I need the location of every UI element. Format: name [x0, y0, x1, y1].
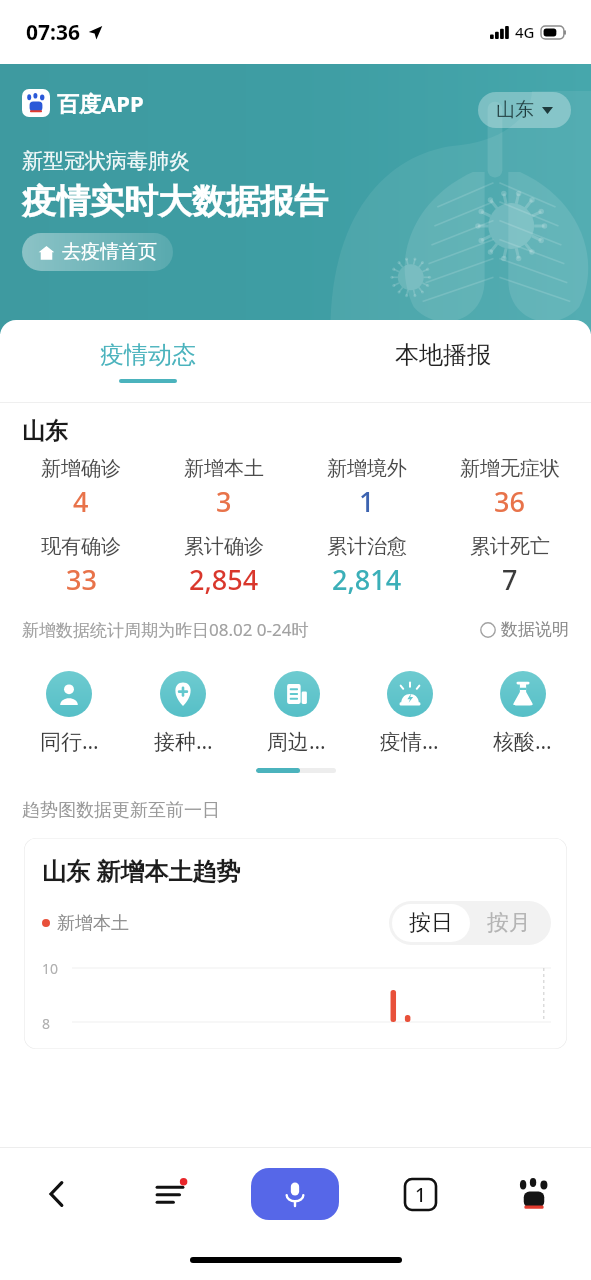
button[interactable]: 本地播报 — [295, 320, 591, 402]
button[interactable]: 疫情动态 — [0, 320, 295, 402]
staticText: 3 — [216, 483, 232, 520]
staticText: 山东 — [22, 417, 68, 446]
staticText: 新型冠状病毒肺炎 — [22, 148, 190, 174]
button[interactable]: 新增无症状 — [438, 456, 581, 520]
button[interactable]: 新增确诊 — [10, 456, 152, 520]
staticText: 累计死亡 — [470, 534, 550, 559]
button[interactable]: 去疫情首页 — [22, 233, 173, 271]
staticText: 2,814 — [332, 561, 402, 598]
staticText: 新增本土 — [184, 456, 264, 481]
button[interactable]: 山东 — [478, 92, 571, 128]
button[interactable]: Menu — [113, 1148, 227, 1240]
staticText: 新增无症状 — [460, 456, 560, 481]
staticText: 累计治愈 — [327, 534, 407, 559]
staticText: 同行… — [40, 727, 99, 756]
button[interactable]: 周边… — [240, 671, 353, 756]
staticText: 1 — [359, 483, 375, 520]
staticText: 新增确诊 — [41, 456, 121, 481]
staticText: 07:36 — [26, 18, 80, 47]
staticText: 现有确诊 — [41, 534, 121, 559]
staticText: 4 — [73, 483, 89, 520]
button[interactable]: Voice search — [251, 1168, 339, 1220]
staticText: 数据说明 — [501, 619, 569, 640]
button[interactable]: 现有确诊 — [10, 534, 152, 598]
button[interactable]: 累计治愈 — [295, 534, 438, 598]
button[interactable]: 累计确诊 — [152, 534, 295, 598]
staticText: 本地播报 — [395, 340, 491, 370]
staticText: 2,854 — [189, 561, 259, 598]
staticText: 趋势图数据更新至前一日 — [22, 799, 220, 822]
staticText: 新增数据统计周期为昨日08.02 0-24时 — [22, 618, 309, 641]
button[interactable]: 按月 — [470, 904, 548, 942]
staticText: 周边… — [267, 727, 326, 756]
staticText: 1 — [415, 1182, 426, 1208]
button[interactable]: 核酸… — [466, 671, 579, 756]
button[interactable]: Tabs — [363, 1148, 477, 1240]
staticText: 山东 — [496, 98, 534, 122]
staticText: 10 — [42, 959, 59, 978]
button[interactable]: 疫情… — [353, 671, 466, 756]
button[interactable]: 累计死亡 — [438, 534, 581, 598]
staticText: 新增本土 — [57, 912, 129, 935]
button[interactable]: 同行… — [12, 671, 126, 756]
button[interactable]: 新增本土 — [152, 456, 295, 520]
button[interactable]: 新增境外 — [295, 456, 438, 520]
staticText: 新增境外 — [327, 456, 407, 481]
staticText: 疫情… — [380, 727, 439, 756]
staticText: 疫情实时大数据报告 — [22, 180, 328, 223]
staticText: 山东 新增本土趋势 — [42, 854, 241, 887]
staticText: 累计确诊 — [184, 534, 264, 559]
button[interactable]: 接种… — [126, 671, 240, 756]
staticText: 4G — [515, 22, 535, 42]
staticText: 百度APP — [57, 88, 144, 118]
staticText: 去疫情首页 — [62, 240, 157, 264]
button[interactable]: Back — [0, 1148, 113, 1240]
staticText: 按日 — [409, 909, 453, 937]
staticText: 36 — [494, 483, 525, 520]
staticText: 接种… — [154, 727, 213, 756]
staticText: 疫情动态 — [100, 340, 196, 370]
button[interactable]: 按日 — [392, 904, 470, 942]
staticText: 7 — [502, 561, 518, 598]
staticText: 核酸… — [493, 727, 552, 756]
staticText: 33 — [66, 561, 97, 598]
button[interactable]: 数据说明 — [480, 619, 569, 640]
staticText: 按月 — [487, 909, 531, 937]
button[interactable]: Baidu home — [477, 1148, 591, 1240]
staticText: 8 — [42, 1014, 51, 1033]
